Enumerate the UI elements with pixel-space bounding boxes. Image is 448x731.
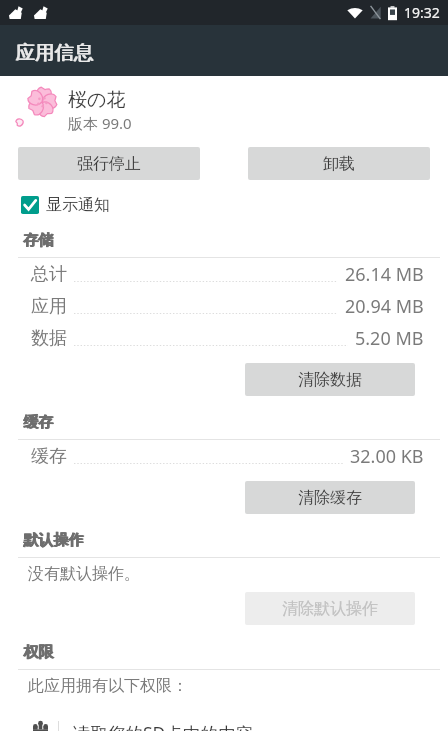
staticText: 存储 (23, 231, 53, 250)
staticText: 缓存 (24, 413, 54, 432)
button[interactable]: 显示通知 (0, 191, 448, 217)
staticText: 此应用拥有以下权限： (28, 676, 188, 696)
button[interactable]: 清除缓存 (245, 481, 415, 514)
staticText: 19:32 (404, 3, 440, 22)
staticText: 强行停止 (77, 154, 141, 174)
staticText: 清除默认操作 (282, 599, 378, 619)
button[interactable]: 数据 (0, 322, 448, 354)
staticText: 20.94 MB (345, 294, 424, 319)
staticText: 应用信息 (16, 40, 94, 65)
staticText: 缓存 (23, 413, 53, 432)
button[interactable]: 应用 (0, 290, 448, 322)
staticText: 读取您的SD卡中的内容 (73, 721, 253, 731)
staticText: 默认操作 (24, 531, 84, 550)
button[interactable]: 卸载 (248, 147, 430, 180)
staticText: 默认操作 (23, 531, 83, 550)
staticText: 显示通知 (46, 195, 110, 215)
staticText: 卸载 (323, 154, 355, 174)
staticText: 5.20 MB (355, 326, 424, 351)
staticText: 数据 (31, 327, 67, 350)
staticText: 总计 (31, 263, 67, 286)
staticText: 存储 (23, 231, 53, 250)
button[interactable]: 强行停止 (18, 147, 200, 180)
button[interactable]: 清除数据 (245, 363, 415, 396)
staticText: 权限 (24, 643, 54, 662)
staticText: 存储 (24, 231, 54, 250)
staticText: 应用 (31, 295, 67, 318)
staticText: 缓存 (23, 413, 53, 432)
staticText: 清除缓存 (298, 488, 362, 508)
staticText: 权限 (23, 643, 53, 662)
staticText: 32.00 KB (350, 444, 424, 469)
staticText: 缓存 (31, 445, 67, 468)
button[interactable]: 读取您的SD卡中的内容 (0, 721, 448, 731)
staticText: 应用信息 (15, 40, 93, 65)
staticText: 权限 (23, 643, 53, 662)
button[interactable]: 缓存 (0, 440, 448, 472)
staticText: 没有默认操作。 (28, 564, 140, 584)
staticText: 桜の花 (68, 88, 126, 112)
staticText: 26.14 MB (345, 262, 424, 287)
button[interactable]: 清除默认操作 (245, 592, 415, 625)
staticText: 默认操作 (23, 531, 83, 550)
staticText: 版本 99.0 (68, 113, 132, 133)
staticText: 清除数据 (298, 370, 362, 390)
button[interactable]: 总计 (0, 258, 448, 290)
